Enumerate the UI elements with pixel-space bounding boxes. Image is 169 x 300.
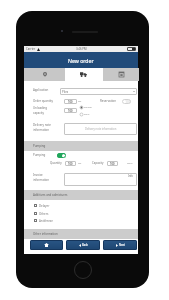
button[interactable]: 100 xyxy=(107,161,118,166)
button[interactable]: Delayer xyxy=(34,203,94,208)
staticText: Invoice xyxy=(33,173,43,177)
staticText: Delayer xyxy=(39,204,50,208)
button[interactable]: 100 xyxy=(65,161,76,166)
staticText: Others xyxy=(39,212,49,216)
staticText: 3:46 PM xyxy=(76,47,87,51)
button[interactable]: Back xyxy=(66,240,100,250)
staticText: m3/h xyxy=(84,113,90,116)
staticText: capacity xyxy=(33,111,45,115)
staticText: m3 xyxy=(78,162,82,165)
staticText: 100 xyxy=(110,162,115,166)
button[interactable]: Home xyxy=(30,240,63,250)
button[interactable]: Delivery tab xyxy=(65,68,102,81)
button[interactable]: Others xyxy=(34,211,94,216)
staticText: Delivery note xyxy=(33,123,51,127)
staticText: m3 xyxy=(78,100,82,103)
button[interactable]: Location tab xyxy=(24,68,65,81)
button[interactable]: Delivery note information xyxy=(64,123,137,135)
button[interactable]: Toggle on xyxy=(57,153,66,158)
staticText: Application xyxy=(33,88,49,92)
staticText: information xyxy=(33,178,50,182)
button[interactable]: Antifreeze xyxy=(34,218,94,223)
button[interactable]: m3/h xyxy=(80,113,90,116)
staticText: m3/h xyxy=(127,162,133,165)
button[interactable]: Piles xyxy=(60,88,137,95)
button[interactable]: Next xyxy=(103,240,137,250)
button[interactable]: m3/min xyxy=(80,106,92,109)
staticText: Order quantity xyxy=(33,99,54,103)
staticText: Antifreeze xyxy=(39,219,53,223)
button[interactable]: Toggle off xyxy=(122,99,131,104)
staticText: Additives and admixtures xyxy=(33,193,68,197)
staticText: 100 xyxy=(68,100,73,104)
staticText: m3/min xyxy=(84,106,92,109)
staticText: Pumping xyxy=(33,153,46,157)
button[interactable]: 100 xyxy=(64,108,77,113)
button[interactable]: 100 xyxy=(64,99,77,104)
staticText: Info xyxy=(128,174,133,178)
staticText: Unloading xyxy=(33,106,48,110)
button[interactable]: Home button xyxy=(74,261,92,279)
staticText: Piles xyxy=(62,90,69,94)
staticText: Pumping xyxy=(33,144,46,148)
staticText: Other information xyxy=(33,232,58,236)
staticText: New order xyxy=(68,57,94,64)
staticText: Carrier xyxy=(26,47,36,51)
button[interactable]: Info xyxy=(64,173,137,186)
staticText: 100 xyxy=(68,162,73,166)
staticText: information xyxy=(33,128,50,132)
staticText: Reservation xyxy=(100,99,117,103)
staticText: 100 xyxy=(68,109,73,113)
staticText: Delivery note information xyxy=(85,127,117,131)
button[interactable]: Schedule tab xyxy=(103,68,139,81)
staticText: Back xyxy=(82,243,88,247)
staticText: Capacity xyxy=(92,161,104,165)
staticText: Quantity xyxy=(50,161,62,165)
staticText: Next xyxy=(119,243,125,247)
